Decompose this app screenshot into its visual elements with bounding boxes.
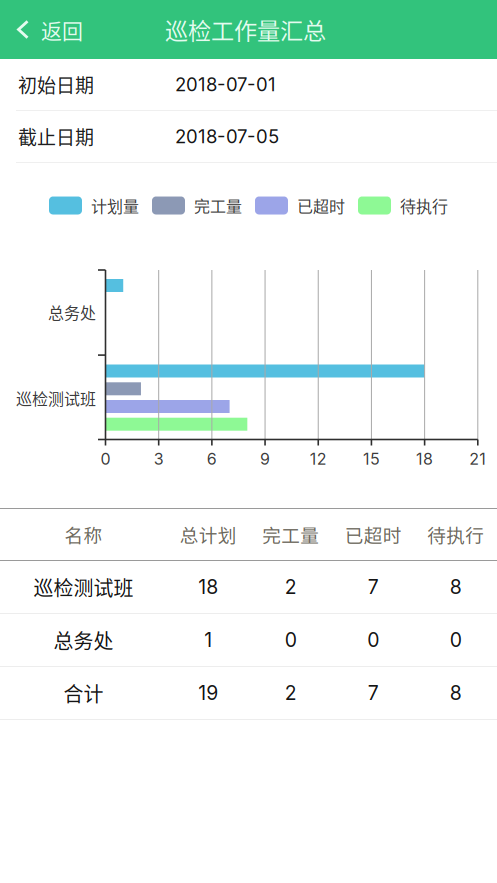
staticText: 0 [100, 449, 110, 469]
staticText: 总务处 [48, 300, 96, 324]
staticText: 完工量 [194, 194, 242, 217]
staticText: 19 [198, 681, 218, 705]
staticText: 待执行 [427, 521, 484, 548]
staticText: 2018-07-01 [175, 73, 276, 96]
staticText: 3 [154, 449, 164, 469]
staticText: 2 [285, 575, 297, 599]
staticText: 巡检测试班 [33, 573, 133, 601]
staticText: 巡检工作量汇总 [165, 13, 326, 46]
staticText: 2 [285, 681, 297, 705]
staticText: 2018-07-05 [175, 125, 279, 148]
staticText: 合计 [63, 679, 103, 707]
staticText: 21 [469, 449, 486, 469]
staticText: 巡检测试班 [16, 386, 96, 410]
staticText: 18 [416, 449, 433, 469]
button[interactable]: 初始日期 [0, 59, 497, 111]
staticText: 1 [204, 628, 212, 652]
staticText: 已超时 [297, 194, 345, 217]
staticText: 截止日期 [18, 123, 94, 150]
staticText: 18 [198, 575, 218, 599]
staticText: 完工量 [262, 521, 319, 548]
staticText: 已超时 [345, 521, 402, 548]
staticText: 总务处 [53, 626, 113, 654]
staticText: 8 [450, 575, 462, 599]
staticText: 15 [363, 449, 380, 469]
staticText: 9 [260, 449, 270, 469]
staticText: 8 [450, 681, 462, 705]
staticText: 计划量 [91, 194, 139, 217]
staticText: 初始日期 [18, 71, 94, 98]
staticText: 6 [207, 449, 217, 469]
staticText: 7 [368, 681, 379, 705]
staticText: 总计划 [180, 521, 237, 548]
staticText: 7 [368, 575, 379, 599]
staticText: 名称 [64, 521, 102, 548]
staticText: 0 [367, 628, 379, 652]
staticText: 0 [285, 628, 297, 652]
button[interactable]: 返回 [0, 6, 83, 53]
staticText: 返回 [41, 14, 83, 45]
button[interactable]: 截止日期 [0, 111, 497, 163]
staticText: 12 [310, 449, 327, 469]
staticText: 0 [450, 628, 462, 652]
staticText: 待执行 [400, 194, 448, 217]
